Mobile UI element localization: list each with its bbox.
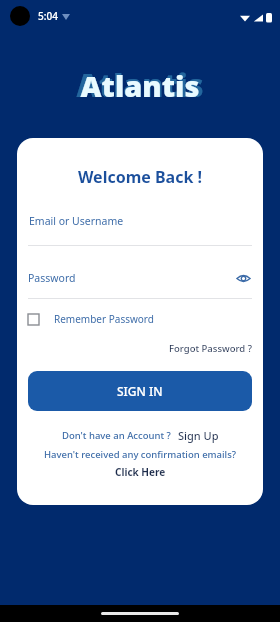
staticText: Welcome Back ! (28, 166, 252, 188)
staticText: Email or Username (29, 214, 124, 228)
staticText: Forgot Password ? (169, 342, 252, 355)
staticText: Haven't received any confirmation emails… (28, 448, 252, 461)
button[interactable]: SIGN IN (28, 371, 252, 411)
staticText: Remember Password (54, 312, 154, 326)
staticText: Sign Up (178, 428, 219, 443)
staticText: Don't have an Account ? (62, 429, 171, 442)
staticText: Password (28, 271, 234, 285)
staticText: Atlantis (76, 64, 204, 106)
button[interactable]: Show password (234, 269, 252, 287)
staticText: Click Here (115, 465, 166, 479)
button[interactable]: Email or Username (28, 214, 252, 228)
staticText: Atlantis (80, 66, 200, 105)
button[interactable]: Password (28, 269, 252, 287)
staticText: SIGN IN (117, 383, 163, 399)
button[interactable]: Remember Password (28, 312, 252, 326)
staticText: 5:04 (38, 9, 58, 23)
button[interactable]: Click Here (115, 465, 166, 479)
button[interactable]: Sign Up (178, 428, 219, 443)
button[interactable]: Forgot Password ? (169, 342, 252, 355)
